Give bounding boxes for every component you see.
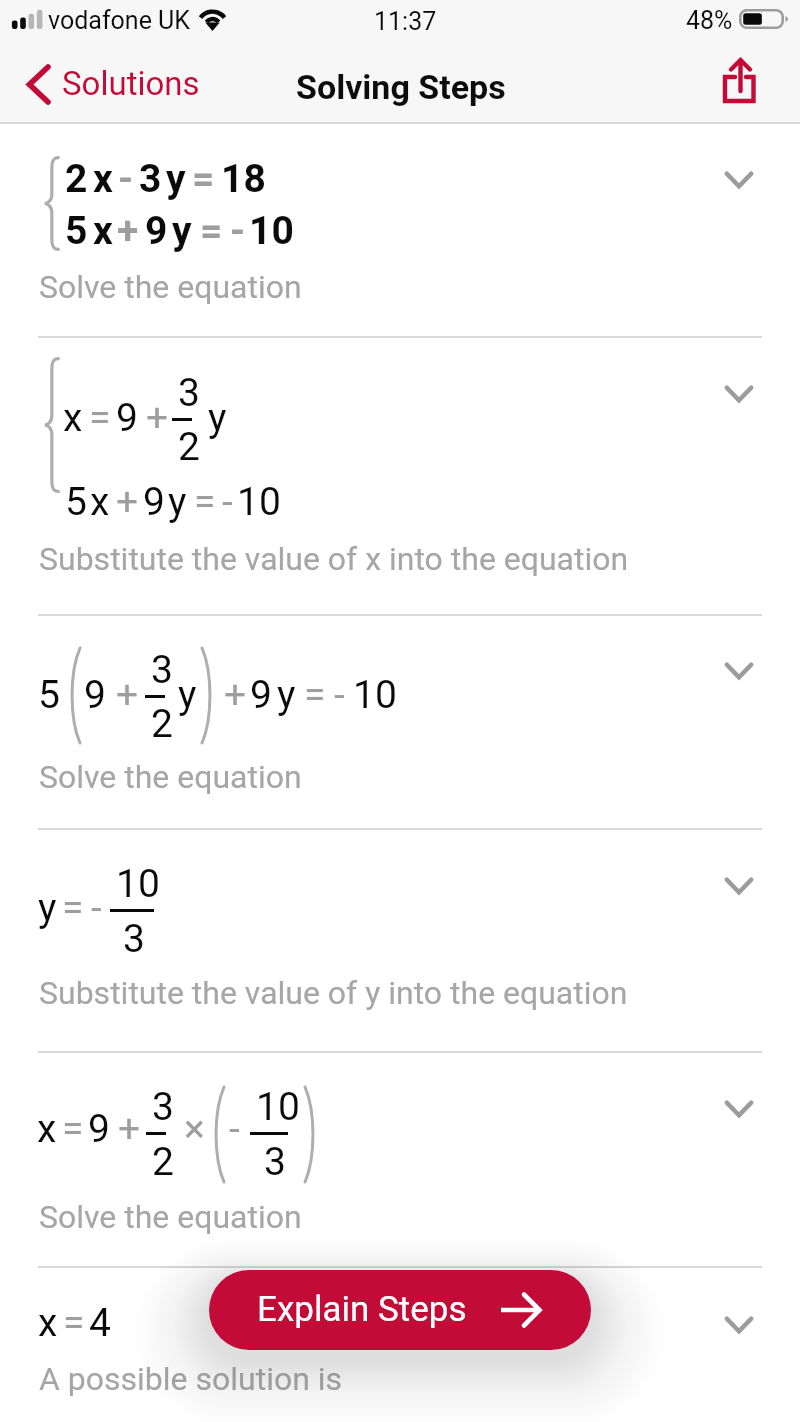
staticText: + bbox=[116, 672, 139, 718]
staticText: 3 bbox=[139, 156, 162, 202]
staticText: x bbox=[93, 156, 113, 202]
staticText: Explain Steps bbox=[257, 1289, 467, 1330]
staticText: 9 bbox=[145, 208, 168, 254]
staticText: = bbox=[194, 479, 216, 525]
staticText: 2 bbox=[178, 424, 200, 470]
staticText: 5 bbox=[65, 208, 88, 254]
button[interactable]: 5 bbox=[0, 615, 800, 829]
staticText: × bbox=[184, 1106, 205, 1152]
staticText: Substitute the value of y into the equat… bbox=[39, 974, 628, 1012]
staticText: y bbox=[208, 395, 227, 441]
button[interactable]: Expand step bbox=[721, 381, 757, 407]
staticText: 10 bbox=[256, 1084, 300, 1130]
staticText: x bbox=[63, 395, 83, 441]
staticText: 10 bbox=[116, 861, 160, 907]
staticText: - bbox=[230, 208, 246, 254]
staticText: 9 bbox=[116, 395, 138, 441]
staticText: 3 bbox=[123, 916, 145, 962]
staticText: 2 bbox=[65, 156, 88, 202]
button[interactable]: x bbox=[0, 1267, 800, 1422]
staticText: y bbox=[168, 479, 187, 525]
staticText: 10 bbox=[237, 479, 281, 525]
staticText: = bbox=[200, 208, 223, 254]
staticText: Solve the equation bbox=[39, 758, 302, 796]
staticText: 48% bbox=[686, 6, 733, 35]
staticText: = bbox=[63, 1300, 85, 1346]
staticText: 3 bbox=[178, 370, 200, 416]
staticText: 10 bbox=[353, 672, 397, 718]
staticText: = bbox=[304, 672, 326, 718]
staticText: 3 bbox=[152, 1084, 174, 1130]
staticText: Substitute the value of x into the equat… bbox=[39, 540, 629, 578]
staticText: 9 bbox=[250, 672, 272, 718]
button[interactable]: Explain Steps bbox=[209, 1270, 591, 1350]
staticText: Solve the equation bbox=[39, 268, 302, 306]
staticText: 9 bbox=[84, 672, 106, 718]
button[interactable]: Expand step bbox=[721, 167, 757, 193]
button[interactable]: 2 bbox=[0, 124, 800, 337]
button[interactable]: Solutions bbox=[26, 45, 218, 124]
staticText: - bbox=[229, 1106, 240, 1152]
button[interactable]: y bbox=[0, 829, 800, 1052]
staticText: + bbox=[116, 479, 139, 525]
staticText: + bbox=[146, 395, 169, 441]
staticText: - bbox=[334, 672, 345, 718]
staticText: 3 bbox=[264, 1139, 286, 1185]
staticText: - bbox=[222, 479, 233, 525]
staticText: 2 bbox=[152, 1139, 174, 1185]
staticText: Solutions bbox=[62, 64, 200, 103]
staticText: - bbox=[118, 156, 134, 202]
staticText: y bbox=[178, 672, 197, 718]
staticText: - bbox=[91, 885, 102, 931]
staticText: + bbox=[117, 208, 139, 254]
staticText: Solve the equation bbox=[39, 1198, 302, 1236]
staticText: = bbox=[62, 885, 84, 931]
staticText: y bbox=[166, 156, 186, 202]
staticText: 5 bbox=[65, 479, 87, 525]
staticText: 11:37 bbox=[374, 7, 437, 36]
button[interactable]: Expand step bbox=[721, 1096, 757, 1122]
staticText: vodafone UK bbox=[48, 6, 190, 35]
staticText: + bbox=[224, 672, 247, 718]
button[interactable]: Share bbox=[708, 50, 772, 114]
staticText: x bbox=[38, 1300, 58, 1346]
staticText: x bbox=[90, 479, 110, 525]
staticText: x bbox=[37, 1106, 57, 1152]
staticText: y bbox=[38, 885, 57, 931]
staticText: 4 bbox=[89, 1300, 111, 1346]
staticText: = bbox=[192, 156, 215, 202]
staticText: 9 bbox=[143, 479, 165, 525]
staticText: 9 bbox=[88, 1106, 110, 1152]
staticText: = bbox=[62, 1106, 84, 1152]
staticText: = bbox=[89, 395, 111, 441]
staticText: + bbox=[118, 1106, 141, 1152]
staticText: x bbox=[93, 208, 113, 254]
staticText: y bbox=[277, 672, 296, 718]
staticText: 2 bbox=[151, 701, 173, 747]
staticText: y bbox=[172, 208, 192, 254]
staticText: 10 bbox=[249, 208, 294, 254]
staticText: A possible solution is bbox=[39, 1360, 343, 1398]
button[interactable]: Expand step bbox=[721, 873, 757, 899]
button[interactable]: x bbox=[0, 1052, 800, 1267]
button[interactable]: Expand step bbox=[721, 1312, 757, 1338]
staticText: 18 bbox=[221, 156, 266, 202]
button[interactable]: x bbox=[0, 337, 800, 615]
staticText: Solving Steps bbox=[296, 67, 506, 107]
button[interactable]: Expand step bbox=[721, 658, 757, 684]
staticText: 5 bbox=[38, 672, 60, 718]
staticText: 3 bbox=[151, 647, 173, 693]
